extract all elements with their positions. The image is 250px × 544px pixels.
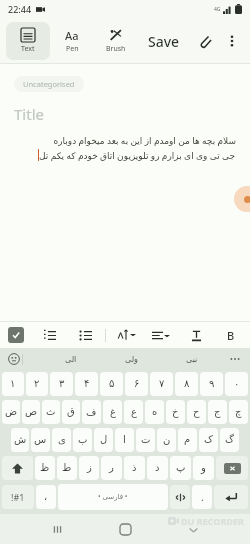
button[interactable]: ب xyxy=(73,428,92,452)
button[interactable]: غ xyxy=(103,400,122,424)
staticText: خ xyxy=(172,406,179,418)
button[interactable]: Bulleted list xyxy=(74,324,96,346)
button[interactable]: ی xyxy=(52,428,71,452)
button[interactable]: ذ xyxy=(124,456,145,480)
staticText: ف xyxy=(86,406,97,418)
staticText: ق xyxy=(67,406,75,418)
button[interactable]: ک xyxy=(199,428,218,452)
button[interactable]: ث xyxy=(42,400,60,424)
button[interactable]: ر xyxy=(101,456,122,480)
button[interactable]: گ xyxy=(220,428,239,452)
button[interactable]: ه xyxy=(145,400,164,424)
button[interactable]: ۸ xyxy=(175,372,198,396)
button[interactable]: Enter xyxy=(214,485,248,509)
staticText: B xyxy=(227,328,235,343)
button[interactable]: Checklist xyxy=(8,327,24,343)
staticText: الی xyxy=(65,355,77,364)
button[interactable]: الی xyxy=(59,353,83,366)
button[interactable]: . xyxy=(192,485,212,509)
button[interactable]: Bold xyxy=(220,324,242,346)
button[interactable]: و xyxy=(193,456,214,480)
button[interactable]: Text size xyxy=(115,324,137,346)
button[interactable]: Emoji xyxy=(6,351,22,367)
button[interactable]: ۴ xyxy=(75,372,98,396)
staticText: ع xyxy=(131,406,137,418)
button[interactable]: ولی xyxy=(119,353,144,366)
button[interactable]: ص xyxy=(22,400,40,424)
button[interactable]: Alignment xyxy=(150,324,172,346)
button[interactable]: Home xyxy=(114,518,136,540)
staticText: ۴ xyxy=(84,378,90,390)
button[interactable]: ع xyxy=(124,400,143,424)
staticText: . xyxy=(201,490,204,504)
button[interactable]: ۱ xyxy=(2,372,24,396)
staticText: ن xyxy=(163,434,171,446)
button[interactable]: Back xyxy=(182,518,204,540)
button[interactable]: More suggestions xyxy=(226,350,244,368)
button[interactable]: نبی xyxy=(180,353,204,366)
button[interactable]: Save xyxy=(142,27,186,56)
button[interactable]: ح xyxy=(187,400,206,424)
button[interactable]: Text colour xyxy=(185,324,207,346)
button[interactable]: م xyxy=(178,428,197,452)
button[interactable]: ۵ xyxy=(100,372,123,396)
button[interactable]: ، xyxy=(36,485,56,509)
staticText: ه xyxy=(152,406,158,418)
button[interactable]: • فارسی • xyxy=(58,484,168,510)
button[interactable]: ق xyxy=(62,400,80,424)
button[interactable]: ت xyxy=(136,428,155,452)
button[interactable]: خ xyxy=(166,400,185,424)
button[interactable]: More options xyxy=(220,29,244,53)
staticText: Uncategorised xyxy=(23,79,75,89)
button[interactable]: Backspace xyxy=(216,456,248,480)
button[interactable]: ل xyxy=(94,428,113,452)
staticText: ت xyxy=(141,434,151,446)
staticText: Brush xyxy=(106,44,126,54)
button[interactable]: چ xyxy=(229,400,248,424)
staticText: ولی xyxy=(125,355,138,364)
button[interactable]: ن xyxy=(157,428,176,452)
button[interactable]: Recents xyxy=(46,518,68,540)
staticText: س xyxy=(34,434,47,446)
button[interactable]: Text xyxy=(6,22,50,60)
staticText: ۵ xyxy=(109,378,115,390)
staticText: جی تی وی ای بزارم رو تلویزیون اتاق خودم … xyxy=(39,149,236,161)
staticText: ذ xyxy=(132,462,137,474)
staticText: ۷ xyxy=(159,378,165,390)
button[interactable]: ف xyxy=(82,400,101,424)
button[interactable]: ج xyxy=(208,400,227,424)
button[interactable]: ۰ xyxy=(225,372,248,396)
button[interactable]: Symbols xyxy=(2,485,34,509)
staticText: Pen xyxy=(66,44,79,54)
button[interactable]: ۳ xyxy=(50,372,73,396)
staticText: ۳ xyxy=(59,378,65,390)
button[interactable]: ۲ xyxy=(26,372,48,396)
button[interactable]: Numbered list xyxy=(38,324,60,346)
staticText: چ xyxy=(235,406,242,418)
staticText: Save xyxy=(148,32,180,51)
button[interactable]: س xyxy=(31,428,50,452)
button[interactable]: Attach xyxy=(192,28,218,54)
button[interactable]: ز xyxy=(79,456,99,480)
button[interactable]: ۶ xyxy=(125,372,148,396)
button[interactable]: د xyxy=(147,456,168,480)
staticText: ص xyxy=(25,406,38,418)
button[interactable]: ظ xyxy=(35,456,55,480)
button[interactable]: ۷ xyxy=(150,372,173,396)
button[interactable]: Cursor control xyxy=(170,485,190,509)
button[interactable]: Shift xyxy=(2,456,33,480)
button[interactable]: Floating assistant xyxy=(234,186,250,212)
button[interactable]: Brush xyxy=(94,22,138,60)
button[interactable]: ط xyxy=(57,456,77,480)
staticText: گ xyxy=(225,434,234,446)
button[interactable]: Uncategorised xyxy=(14,76,84,92)
button[interactable]: پ xyxy=(170,456,191,480)
button[interactable]: ض xyxy=(2,400,20,424)
button[interactable]: ۹ xyxy=(200,372,223,396)
staticText: پ xyxy=(176,462,186,474)
staticText: ۹ xyxy=(209,378,215,390)
button[interactable]: ا xyxy=(115,428,134,452)
button[interactable]: ش xyxy=(11,428,29,452)
staticText: ۲ xyxy=(34,378,40,390)
button[interactable]: Aa xyxy=(50,22,94,60)
